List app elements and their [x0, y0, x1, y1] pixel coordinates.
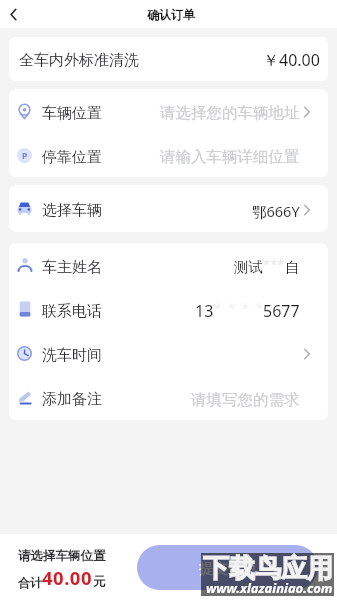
staticText: *** [263, 255, 285, 273]
staticText: 测试 [234, 258, 263, 276]
button[interactable]: 洗车时间 [9, 331, 328, 375]
staticText: 添加备注 [42, 390, 102, 409]
staticText: 鄂666Y [252, 201, 300, 221]
staticText: * * * * [214, 299, 263, 317]
button[interactable]: 选择车辆 [9, 185, 328, 232]
staticText: 合计 [18, 575, 42, 590]
staticText: 请选择车辆位置 [18, 548, 106, 564]
staticText: 选择车辆 [42, 201, 102, 220]
staticText: 请输入车辆详细位置 [160, 147, 300, 167]
staticText: 车主姓名 [42, 258, 102, 277]
button[interactable]: 联系电话 [9, 287, 328, 331]
button[interactable]: Back [0, 1, 26, 27]
staticText: 40.00 [42, 565, 93, 590]
staticText: 请选择您的车辆地址 [160, 103, 300, 123]
staticText: 13 [195, 300, 214, 322]
staticText: 元 [93, 574, 106, 590]
staticText: www.xlazainiao.com [206, 579, 333, 597]
staticText: 洗车时间 [42, 346, 102, 365]
staticText: 车辆位置 [42, 104, 102, 123]
button[interactable]: 车辆位置 [9, 89, 328, 133]
staticText: 全车内外标准清洗 [19, 51, 139, 70]
staticText: P [22, 150, 28, 162]
staticText: 自 [285, 258, 300, 276]
staticText: 联系电话 [42, 302, 102, 321]
staticText: 确认订单 [147, 7, 195, 22]
staticText: 5677 [263, 300, 300, 322]
staticText: ￥40.00 [263, 49, 320, 71]
staticText: 停靠位置 [42, 148, 102, 167]
button[interactable]: P [9, 133, 328, 177]
staticText: 请填写您的需求 [191, 390, 300, 410]
staticText: 下载鸟应用 [203, 552, 333, 585]
button[interactable]: 添加备注 [9, 375, 328, 420]
button[interactable]: 提交订单 [137, 545, 318, 590]
staticText: 提交订单 [199, 559, 257, 577]
button[interactable]: 车主姓名 [9, 243, 328, 287]
